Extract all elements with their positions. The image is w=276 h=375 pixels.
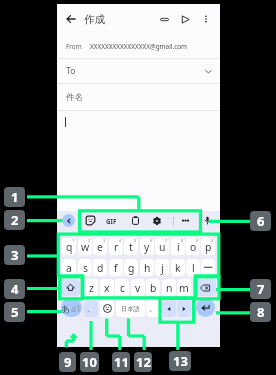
staticText: 。	[149, 304, 157, 313]
staticText: m	[179, 281, 189, 295]
staticText: 作成	[84, 13, 105, 26]
staticText: 2	[11, 211, 19, 229]
button[interactable]: d	[93, 259, 107, 276]
button[interactable]: p	[201, 238, 215, 255]
staticText: 11	[114, 353, 129, 371]
button[interactable]: v	[131, 279, 145, 296]
staticText: 1	[11, 188, 19, 206]
staticText: f	[114, 261, 118, 275]
button[interactable]: GIF	[103, 214, 119, 227]
staticText: GIF	[106, 217, 117, 225]
button[interactable]: Move cursor left	[162, 300, 176, 317]
staticText: r	[114, 240, 119, 254]
button[interactable]: c	[115, 279, 129, 296]
button[interactable]: ー	[201, 259, 215, 276]
button[interactable]: w	[78, 238, 92, 255]
staticText: 0	[211, 238, 214, 243]
staticText: 4	[11, 280, 19, 298]
button[interactable]: あ	[61, 298, 82, 317]
button[interactable]: 、	[84, 300, 98, 317]
button[interactable]: z	[84, 279, 98, 296]
staticText: 1	[72, 238, 75, 243]
button[interactable]: o	[186, 238, 200, 255]
button[interactable]: f	[109, 259, 123, 276]
button[interactable]: r	[109, 238, 123, 255]
button[interactable]: h	[140, 259, 154, 276]
staticText: 8	[257, 303, 265, 321]
button[interactable]: Shift	[60, 279, 80, 296]
staticText: y	[144, 240, 150, 254]
button[interactable]: More options	[198, 11, 214, 27]
button[interactable]: u	[155, 238, 169, 255]
staticText: 件名	[66, 92, 83, 103]
staticText: a	[66, 261, 72, 275]
button[interactable]: Backspace	[193, 279, 216, 296]
staticText: s	[83, 261, 88, 275]
staticText: 6	[150, 238, 153, 243]
staticText: h	[144, 261, 151, 275]
button[interactable]: Attach file	[155, 10, 173, 28]
staticText: 日本語	[121, 305, 140, 313]
staticText: 8	[181, 238, 184, 243]
button[interactable]: g	[124, 259, 138, 276]
button[interactable]: Move cursor right	[177, 300, 191, 317]
staticText: 9	[64, 353, 72, 371]
button[interactable]: 件名	[57, 84, 220, 110]
button[interactable]: Send	[176, 10, 194, 28]
button[interactable]: x	[100, 279, 114, 296]
staticText: 7	[257, 280, 265, 298]
staticText: b	[150, 281, 157, 295]
staticText: q	[66, 240, 73, 254]
staticText: 9	[196, 238, 199, 243]
button[interactable]: i	[171, 238, 185, 255]
button[interactable]: 。	[146, 300, 160, 317]
staticText: x	[104, 281, 110, 295]
staticText: 6	[257, 212, 265, 230]
button[interactable]: q	[62, 238, 76, 255]
staticText: To	[66, 65, 76, 77]
button[interactable]: Show toolbar	[62, 214, 75, 227]
staticText: ー	[203, 261, 214, 274]
staticText: あ	[61, 303, 71, 314]
button[interactable]: To	[57, 59, 220, 83]
button[interactable]: n	[162, 279, 176, 296]
button[interactable]: Settings	[150, 214, 163, 227]
button[interactable]: m	[177, 279, 191, 296]
button[interactable]: Emoji	[100, 300, 114, 317]
staticText: g	[128, 261, 135, 275]
staticText: 5	[134, 238, 137, 243]
button[interactable]: k	[171, 259, 185, 276]
staticText: 3	[103, 238, 106, 243]
button[interactable]: e	[93, 238, 107, 255]
button[interactable]: Clipboard	[129, 214, 142, 227]
staticText: o	[190, 240, 197, 254]
button[interactable]: Voice input	[201, 214, 214, 227]
staticText: j	[161, 261, 164, 275]
staticText: 13	[173, 352, 188, 370]
button[interactable]: 日本語	[116, 300, 145, 317]
staticText: l	[192, 261, 195, 275]
staticText: z	[89, 281, 94, 295]
button[interactable]: y	[140, 238, 154, 255]
staticText: 10	[82, 353, 97, 371]
button[interactable]: Enter	[196, 298, 215, 317]
button[interactable]: Back	[61, 9, 81, 29]
button[interactable]: t	[124, 238, 138, 255]
button[interactable]: s	[78, 259, 92, 276]
staticText: XXXXXXXXXXXXXXXX@gmail.com	[90, 42, 188, 51]
button[interactable]: Stickers	[84, 214, 97, 227]
button[interactable]: More	[179, 214, 192, 227]
staticText: 7	[165, 238, 168, 243]
staticText: p	[205, 240, 212, 254]
staticText: 3	[11, 246, 19, 264]
button[interactable]: a	[62, 259, 76, 276]
staticText: i	[177, 240, 180, 254]
staticText: 5	[11, 303, 19, 321]
staticText: a1	[71, 302, 82, 314]
staticText: d	[97, 261, 104, 275]
button[interactable]: l	[186, 259, 200, 276]
button[interactable]: b	[146, 279, 160, 296]
button[interactable]: j	[155, 259, 169, 276]
staticText: e	[97, 240, 103, 254]
staticText: From	[66, 42, 82, 51]
